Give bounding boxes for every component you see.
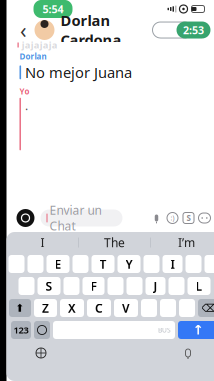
button[interactable]: S [37, 277, 60, 295]
button[interactable]: V [114, 299, 138, 317]
staticText: . [25, 98, 28, 114]
button[interactable]: D [63, 277, 79, 295]
button[interactable]: Z [34, 299, 57, 317]
staticText: I’m [178, 234, 195, 250]
staticText: S [186, 213, 190, 223]
staticText: No mejor Juana [25, 63, 132, 82]
button[interactable]: Camera [15, 208, 35, 228]
button[interactable]: The [79, 232, 150, 253]
button[interactable]: W [27, 255, 43, 273]
staticText: F [90, 278, 96, 294]
staticText: V [122, 300, 130, 316]
staticText: 5:54 [42, 2, 63, 16]
button[interactable]: I [7, 232, 78, 253]
button[interactable]: U [143, 255, 159, 273]
button[interactable]: Send [178, 321, 214, 339]
staticText: Z [42, 300, 49, 316]
staticText: L [195, 278, 202, 294]
button[interactable]: Voice message [148, 209, 164, 227]
staticText: ‹ [20, 16, 27, 44]
button[interactable]: K [168, 277, 184, 295]
button[interactable]: 2:53 [176, 21, 210, 38]
button[interactable]: Enviar un Chat [40, 209, 122, 226]
button[interactable]: C [87, 299, 111, 317]
button[interactable]: Stickers [180, 209, 196, 227]
button[interactable]: Delete [198, 299, 214, 317]
button[interactable]: Y [117, 255, 140, 273]
staticText: ⬆ [15, 302, 24, 314]
button[interactable]: Space [53, 321, 175, 339]
button[interactable]: X [60, 299, 84, 317]
staticText: The [104, 234, 125, 250]
button[interactable]: Change keyboard [31, 343, 51, 363]
button[interactable]: L [187, 277, 210, 295]
button[interactable]: Emoji [164, 209, 180, 227]
button[interactable]: M [179, 299, 195, 317]
button[interactable]: G [107, 277, 123, 295]
staticText: S [45, 278, 52, 294]
button[interactable]: I [162, 255, 182, 273]
button[interactable]: Back [15, 19, 31, 41]
staticText: Y [125, 256, 132, 272]
staticText: 2:53 [183, 23, 204, 37]
button[interactable]: F [82, 277, 104, 295]
staticText: J [153, 278, 157, 294]
staticText: I [170, 256, 174, 272]
button[interactable]: Q [8, 255, 24, 273]
button[interactable]: B [141, 299, 157, 317]
button[interactable]: Dorlan Cardona [55, 10, 121, 49]
button[interactable]: N [160, 299, 176, 317]
staticText: BUS [158, 326, 171, 334]
button[interactable]: Profile [33, 19, 55, 41]
button[interactable]: T [91, 255, 114, 273]
button[interactable]: J [145, 277, 165, 295]
staticText: Dorlan [19, 51, 46, 62]
staticText: jajajaja [22, 39, 58, 51]
staticText: T [99, 256, 106, 272]
button[interactable]: P [204, 255, 214, 273]
button[interactable]: Dictation [178, 343, 198, 363]
staticText: ⌫ [201, 302, 214, 314]
staticText: 123 [13, 324, 28, 336]
staticText: Yo [19, 86, 29, 97]
staticText: E [54, 256, 61, 272]
button[interactable]: E [46, 255, 69, 273]
staticText: :) [170, 214, 174, 222]
button[interactable]: A [18, 277, 34, 295]
button[interactable]: Games [196, 209, 212, 227]
button[interactable]: R [72, 255, 88, 273]
button[interactable]: Emoji keyboard [34, 321, 50, 339]
staticText: Dorlan Cardona [60, 10, 121, 49]
button[interactable]: I’m [151, 232, 214, 253]
staticText: X [68, 300, 76, 316]
button[interactable]: H [126, 277, 142, 295]
staticText: I [41, 234, 45, 250]
staticText: C [95, 300, 103, 316]
button[interactable]: Shift [9, 299, 31, 317]
button[interactable]: 123 [11, 321, 31, 339]
staticText: ↑ [192, 322, 203, 337]
button[interactable]: O [185, 255, 201, 273]
staticText: Enviar un Chat [49, 202, 101, 234]
